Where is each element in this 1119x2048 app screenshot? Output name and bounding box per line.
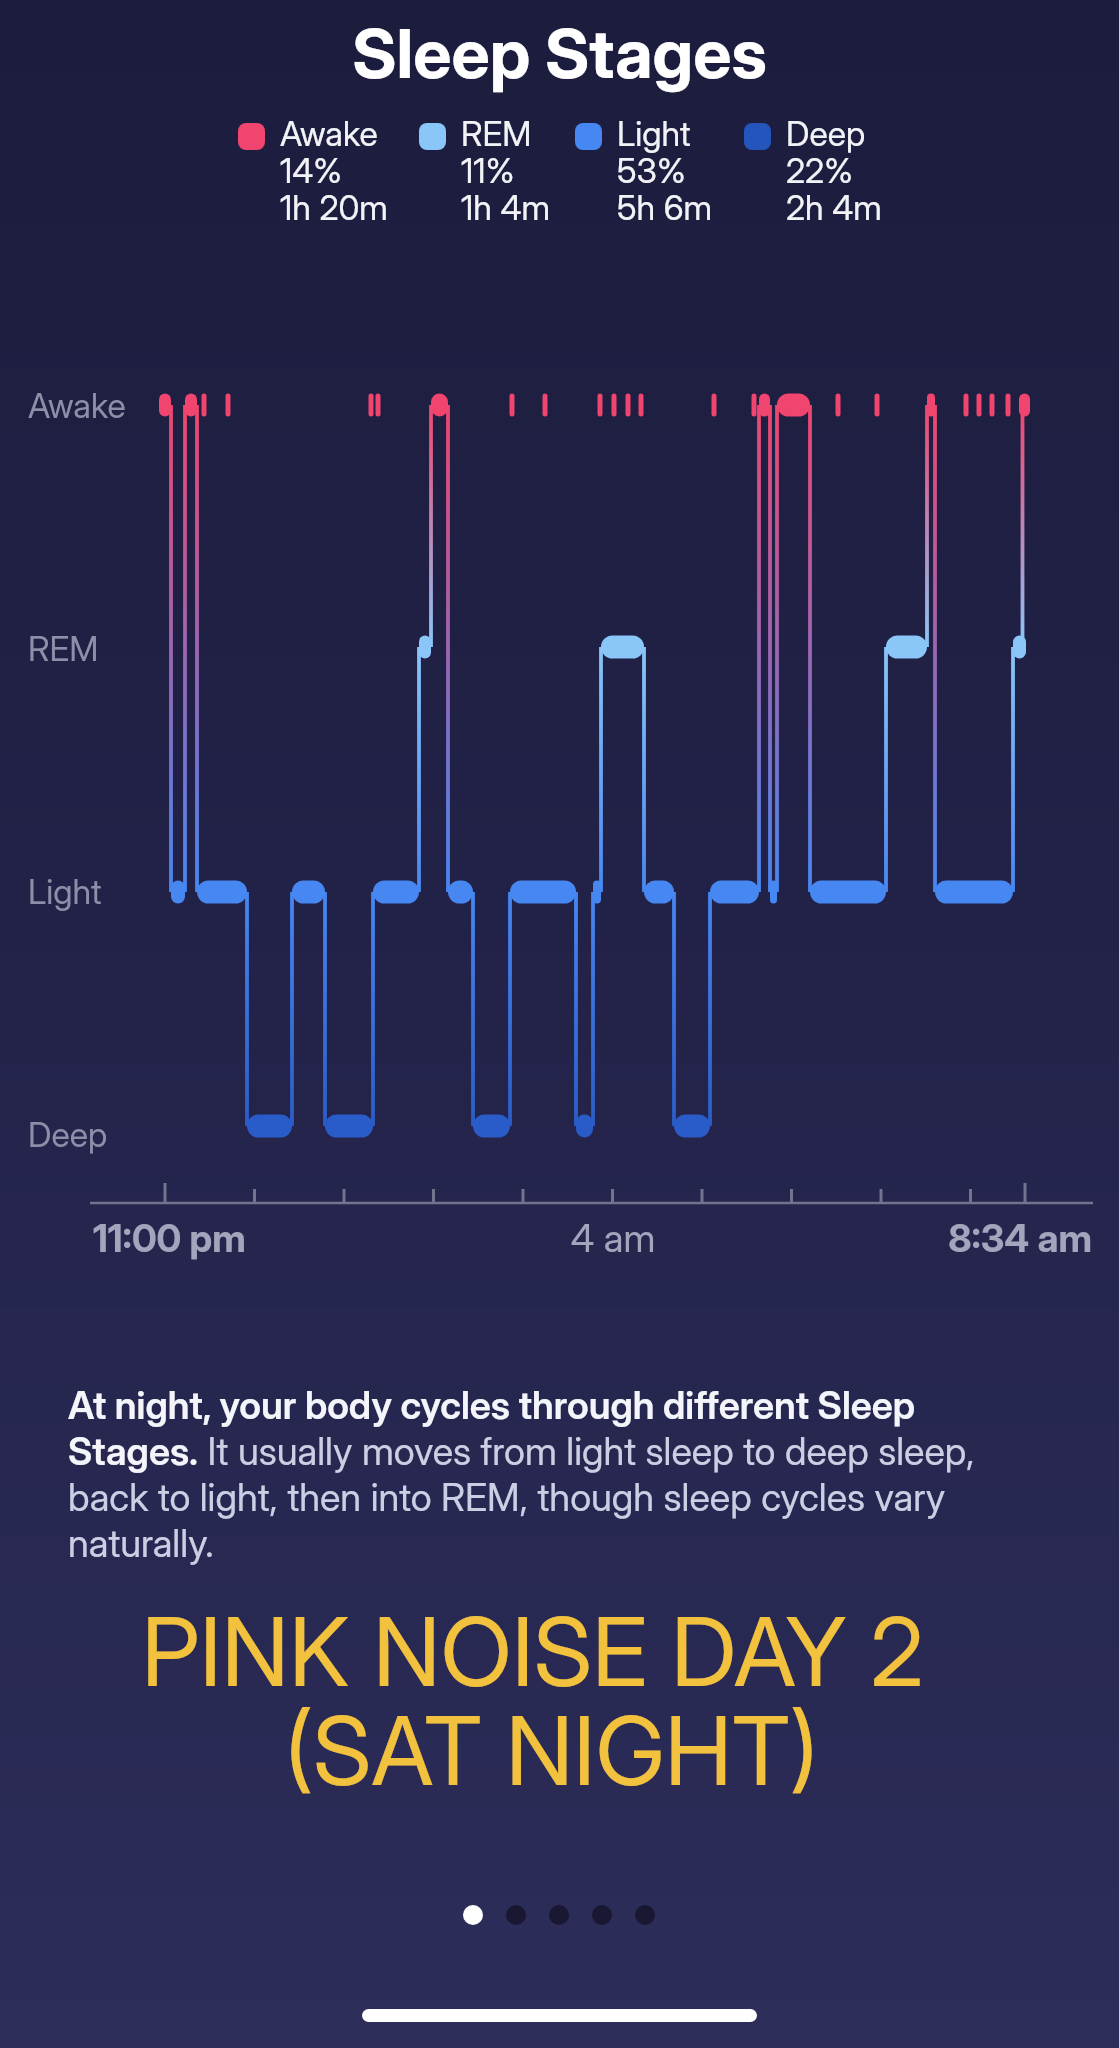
- staticText: 11%: [461, 150, 515, 191]
- staticText: Awake: [28, 385, 126, 426]
- button[interactable]: [592, 1905, 612, 1925]
- staticText: Light: [617, 113, 691, 154]
- staticText: Light: [28, 871, 102, 912]
- button[interactable]: [549, 1905, 569, 1925]
- button[interactable]: [506, 1905, 526, 1925]
- staticText: 2h 4m: [786, 187, 882, 228]
- staticText: 1h 20m: [280, 187, 388, 228]
- staticText: Awake: [280, 113, 378, 154]
- button[interactable]: [463, 1905, 483, 1925]
- button[interactable]: [635, 1905, 655, 1925]
- staticText: 14%: [280, 150, 343, 191]
- staticText: At night, your body cycles through diffe…: [68, 1382, 998, 1566]
- staticText: PINK NOISE DAY 2: [0, 1594, 1092, 1709]
- staticText: Deep: [28, 1114, 108, 1155]
- staticText: 53%: [617, 150, 686, 191]
- staticText: 1h 4m: [461, 187, 550, 228]
- staticText: 8:34 am: [800, 1215, 1092, 1261]
- staticText: 11:00 pm: [93, 1215, 246, 1261]
- staticText: (SAT NIGHT): [0, 1693, 1111, 1808]
- staticText: 4 am: [413, 1215, 813, 1261]
- staticText: Deep: [786, 113, 866, 154]
- staticText: REM: [28, 628, 99, 669]
- staticText: 22%: [786, 150, 853, 191]
- button[interactable]: [362, 2009, 757, 2022]
- staticText: REM: [461, 113, 532, 154]
- staticText: 5h 6m: [617, 187, 713, 228]
- staticText: Sleep Stages: [0, 12, 1119, 94]
